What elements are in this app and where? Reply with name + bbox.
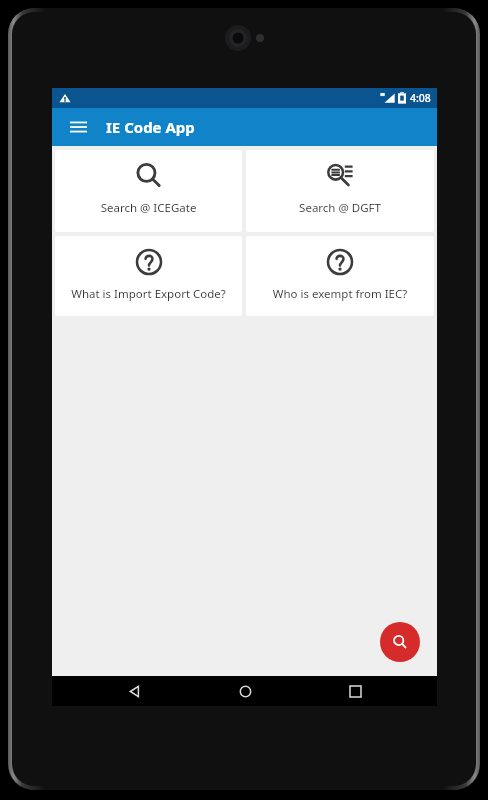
staticText: Search @ DGFT [250,200,430,216]
button[interactable]: Search [380,622,420,662]
button[interactable]: What is Import Export Code? [55,236,242,316]
button[interactable]: Recent apps [327,676,383,706]
staticText: IE Code App [106,117,195,137]
staticText: What is Import Export Code? [59,286,238,302]
button[interactable]: Open navigation menu [64,113,92,141]
staticText: 4:08 [410,91,431,105]
button[interactable]: Search @ DGFT [246,150,434,232]
staticText: Who is exempt from IEC? [250,286,430,302]
button[interactable]: Back [106,676,162,706]
button[interactable]: Search @ ICEGate [55,150,242,232]
button[interactable]: Who is exempt from IEC? [246,236,434,316]
staticText: Search @ ICEGate [59,200,238,216]
button[interactable]: Home [217,676,273,706]
